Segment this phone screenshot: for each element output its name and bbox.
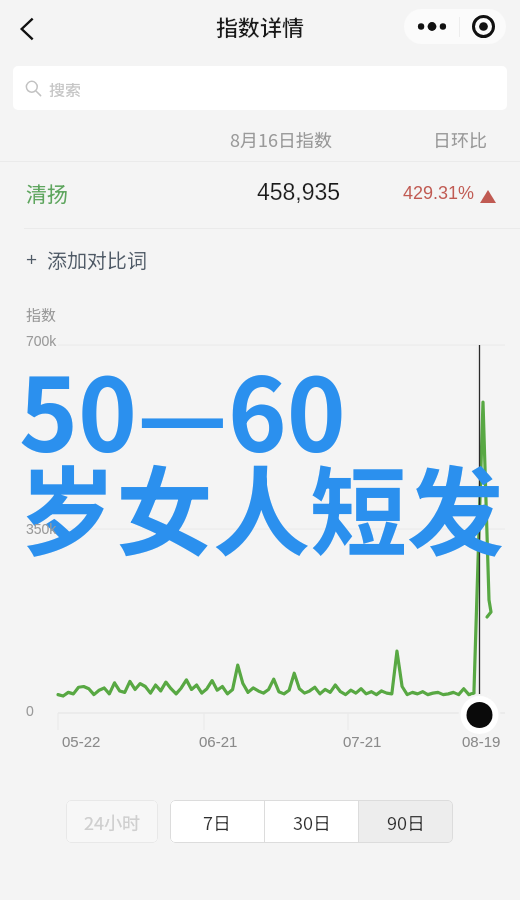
staticText: 0: [26, 703, 34, 719]
staticText: 指数详情: [216, 10, 305, 42]
staticText: 清扬: [26, 178, 68, 208]
button[interactable]: +: [26, 240, 147, 278]
staticText: 岁女人短发: [19, 435, 504, 575]
button[interactable]: Close mini program: [460, 9, 506, 44]
staticText: 指数: [26, 304, 57, 326]
button[interactable]: 清扬: [0, 162, 520, 228]
button[interactable]: More options: [404, 9, 459, 44]
staticText: 700k: [26, 333, 57, 349]
staticText: 添加对比词: [47, 245, 147, 274]
staticText: 350k: [26, 521, 57, 537]
button[interactable]: 90日: [359, 800, 453, 843]
staticText: 8月16日指数: [230, 126, 332, 152]
staticText: 搜索: [49, 77, 82, 100]
staticText: 05-22: [62, 733, 101, 750]
staticText: 07-21: [343, 733, 382, 750]
staticText: 日环比: [433, 126, 487, 152]
staticText: 08-19: [462, 733, 501, 750]
staticText: 90日: [387, 809, 425, 835]
staticText: 429.31%: [403, 183, 475, 203]
button[interactable]: 30日: [265, 800, 358, 843]
staticText: 30日: [293, 809, 331, 835]
button[interactable]: Back: [4, 6, 50, 52]
button[interactable]: 7日: [170, 800, 264, 843]
staticText: 7日: [203, 809, 231, 835]
button[interactable]: 搜索: [13, 66, 507, 110]
button[interactable]: 24小时: [66, 800, 158, 843]
staticText: +: [26, 249, 38, 270]
staticText: 06-21: [199, 733, 238, 750]
staticText: 50—60: [19, 336, 346, 481]
staticText: 458,935: [257, 179, 341, 205]
staticText: 24小时: [84, 809, 140, 835]
